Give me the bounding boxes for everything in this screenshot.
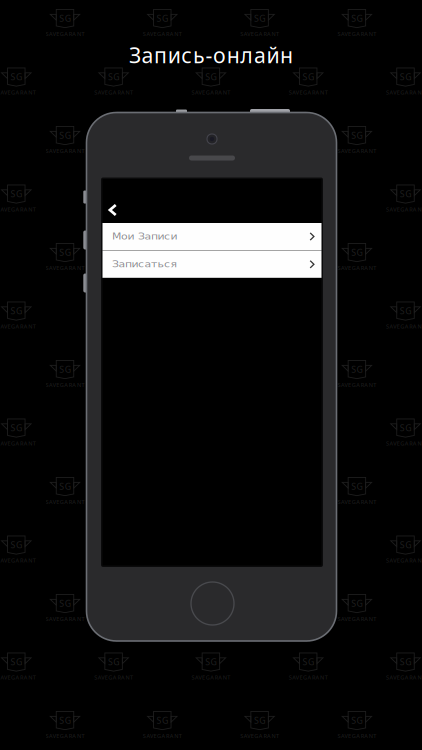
- staticText: SAVEGARANT: [94, 673, 133, 681]
- staticText: SAVEGARANT: [191, 88, 230, 96]
- staticText: SG: [59, 714, 71, 726]
- button[interactable]: Back: [102, 197, 136, 223]
- staticText: SAVEGARANT: [0, 556, 36, 564]
- staticText: SAVEGARANT: [45, 30, 84, 37]
- staticText: SAVEGARANT: [386, 88, 422, 96]
- staticText: SG: [400, 188, 411, 200]
- staticText: SAVEGARANT: [45, 147, 84, 154]
- staticText: SG: [59, 363, 71, 375]
- staticText: SAVEGARANT: [191, 673, 230, 681]
- button[interactable]: Мои Записи: [102, 223, 321, 250]
- staticText: SAVEGARANT: [289, 88, 328, 96]
- staticText: SG: [400, 422, 411, 434]
- staticText: SG: [11, 188, 22, 200]
- staticText: SG: [59, 597, 71, 609]
- staticText: SAVEGARANT: [45, 498, 84, 505]
- staticText: SAVEGARANT: [337, 498, 376, 505]
- staticText: SAVEGARANT: [337, 381, 376, 388]
- staticText: SG: [254, 246, 265, 258]
- staticText: SG: [59, 246, 71, 258]
- staticText: SG: [400, 656, 411, 668]
- staticText: SG: [400, 305, 411, 317]
- staticText: SAVEGARANT: [337, 615, 376, 622]
- staticText: SAVEGARANT: [337, 264, 376, 271]
- staticText: SAVEGARANT: [386, 322, 422, 330]
- staticText: SAVEGARANT: [337, 30, 376, 37]
- staticText: SAVEGARANT: [289, 673, 328, 681]
- button[interactable]: Записаться: [102, 251, 321, 278]
- staticText: SG: [351, 714, 363, 726]
- staticText: SAVEGARANT: [0, 439, 36, 447]
- staticText: SAVEGARANT: [240, 732, 279, 739]
- staticText: SAVEGARANT: [289, 322, 328, 330]
- staticText: SG: [11, 656, 22, 668]
- staticText: SAVEGARANT: [94, 322, 133, 330]
- staticText: SAVEGARANT: [94, 556, 133, 564]
- staticText: SG: [157, 714, 168, 726]
- staticText: SG: [400, 71, 411, 83]
- staticText: SAVEGARANT: [143, 30, 182, 37]
- staticText: SG: [11, 539, 22, 551]
- staticText: SAVEGARANT: [289, 205, 328, 213]
- staticText: SG: [351, 480, 363, 492]
- staticText: SG: [59, 129, 71, 141]
- staticText: SAVEGARANT: [0, 322, 36, 330]
- staticText: SAVEGARANT: [45, 615, 84, 622]
- staticText: SG: [157, 12, 168, 24]
- staticText: SG: [351, 12, 363, 24]
- staticText: SAVEGARANT: [240, 30, 279, 37]
- staticText: SAVEGARANT: [337, 147, 376, 154]
- staticText: SG: [11, 305, 22, 317]
- staticText: SAVEGARANT: [386, 205, 422, 213]
- staticText: SAVEGARANT: [0, 673, 36, 681]
- staticText: SAVEGARANT: [337, 732, 376, 739]
- staticText: SG: [157, 246, 168, 258]
- staticText: SG: [11, 71, 22, 83]
- staticText: SAVEGARANT: [143, 732, 182, 739]
- staticText: SG: [351, 597, 363, 609]
- staticText: SG: [59, 12, 71, 24]
- staticText: SG: [254, 12, 265, 24]
- staticText: SG: [351, 129, 363, 141]
- staticText: SG: [11, 422, 22, 434]
- staticText: SG: [351, 246, 363, 258]
- staticText: SAVEGARANT: [94, 439, 133, 447]
- staticText: Записаться: [112, 259, 162, 269]
- staticText: SG: [108, 656, 119, 668]
- staticText: SAVEGARANT: [289, 439, 328, 447]
- staticText: SAVEGARANT: [386, 673, 422, 681]
- staticText: SG: [108, 71, 119, 83]
- staticText: Мои Записи: [112, 232, 162, 241]
- staticText: SG: [302, 71, 314, 83]
- staticText: SAVEGARANT: [0, 205, 36, 213]
- staticText: SAVEGARANT: [289, 556, 328, 564]
